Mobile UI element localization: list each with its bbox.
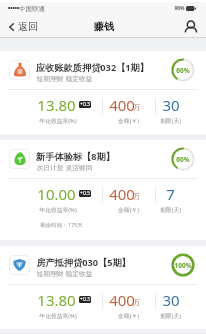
staticText: 短期理财 稳定收益 — [36, 269, 93, 278]
button[interactable]: 房产抵押贷030【5期】 — [0, 246, 206, 329]
button[interactable]: Account — [182, 16, 204, 38]
staticText: +0.5 — [80, 190, 90, 197]
staticText: 期限(天) — [160, 206, 181, 214]
staticText: 13.80 — [37, 290, 76, 310]
staticText: 30 — [162, 95, 180, 115]
staticText: 年化收益率(%) — [39, 117, 77, 125]
staticText: 万 — [133, 192, 140, 201]
staticText: 10.00 — [37, 184, 76, 204]
staticText: 96% — [174, 5, 185, 12]
staticText: 返回 — [18, 20, 38, 33]
staticText: 400 — [109, 95, 135, 115]
staticText: 万 — [133, 298, 140, 307]
staticText: 期限(天) — [160, 312, 181, 320]
staticText: 金额(￥) — [118, 117, 139, 125]
staticText: 剩余时间：175天 — [40, 221, 83, 229]
staticText: 年化收益率(%) — [39, 312, 77, 320]
staticText: 新手体验标【8期】 — [36, 150, 115, 163]
staticText: 期限(天) — [160, 117, 181, 125]
staticText: 中国联通 — [19, 5, 45, 13]
staticText: 13.80 — [37, 95, 76, 115]
staticText: 100% — [174, 261, 192, 270]
button[interactable]: 应收账款质押贷032【1期】 — [0, 51, 206, 134]
staticText: 60% — [176, 66, 190, 75]
staticText: 短期理财 稳定收益 — [36, 74, 93, 83]
staticText: 赚钱 — [94, 20, 114, 33]
staticText: 金额(￥) — [118, 206, 139, 214]
staticText: +0.3 — [80, 296, 90, 303]
staticText: 400 — [109, 184, 135, 204]
staticText: 7 — [166, 184, 175, 204]
staticText: 万 — [133, 103, 140, 112]
staticText: 400 — [109, 290, 135, 310]
staticText: +0.3 — [80, 101, 90, 108]
staticText: 年化收益率(%) — [39, 206, 77, 214]
button[interactable]: 返回 — [4, 16, 43, 37]
staticText: 次日计息 灵活赎回 — [36, 163, 93, 172]
staticText: 金额(￥) — [118, 312, 139, 320]
staticText: 30 — [162, 290, 180, 310]
button[interactable]: 新手体验标【8期】 — [0, 140, 206, 240]
staticText: 房产抵押贷030【5期】 — [36, 256, 131, 269]
staticText: 60% — [176, 155, 190, 164]
staticText: 应收账款质押贷032【1期】 — [36, 61, 149, 74]
